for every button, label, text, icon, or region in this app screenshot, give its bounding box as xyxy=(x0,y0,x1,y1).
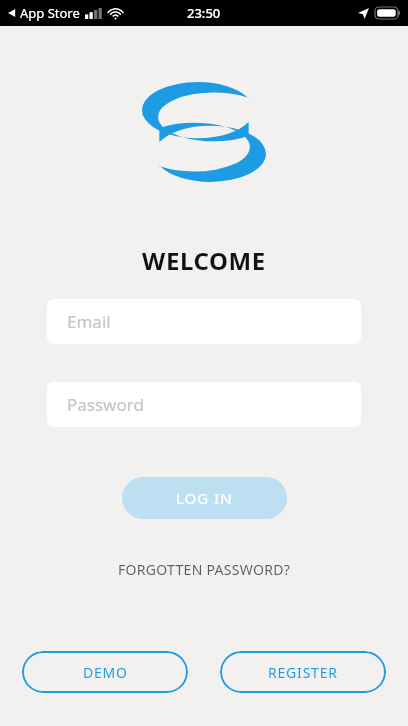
button[interactable]: FORGOTTEN PASSWORD? xyxy=(110,556,299,583)
staticText: REGISTER xyxy=(268,663,338,682)
staticText: App Store xyxy=(20,4,80,22)
staticText: LOG IN xyxy=(176,488,233,508)
button[interactable]: DEMO xyxy=(22,651,188,693)
button[interactable]: Email xyxy=(47,299,361,344)
staticText: Password xyxy=(67,393,144,416)
staticText: Email xyxy=(67,310,111,333)
button[interactable]: REGISTER xyxy=(220,651,386,693)
staticText: WELCOME xyxy=(0,244,408,277)
button[interactable]: LOG IN xyxy=(122,477,287,519)
button[interactable]: Password xyxy=(47,382,361,427)
staticText: 23:50 xyxy=(187,4,221,22)
staticText: DEMO xyxy=(83,663,128,682)
staticText: FORGOTTEN PASSWORD? xyxy=(118,560,291,579)
